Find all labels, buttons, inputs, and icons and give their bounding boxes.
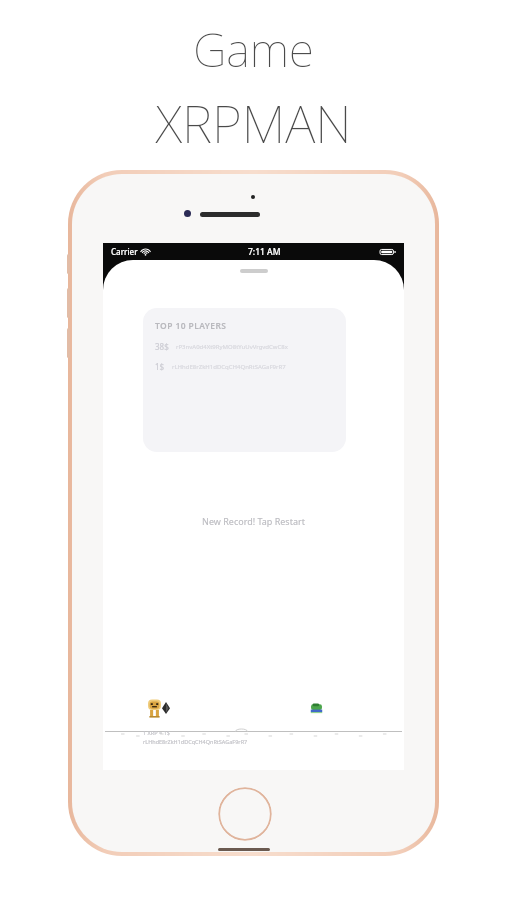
staticText: XRPMAN: [155, 87, 352, 158]
staticText: 1 XRP = 1$: [143, 729, 170, 736]
staticText: Game: [193, 18, 314, 81]
staticText: 38$: [155, 341, 169, 352]
staticText: rLHhdE8rZkH1dDCqCH4QnRtSAGaF9rR7: [143, 738, 248, 745]
staticText: rP3nvA0d4Xt9RyMO8tYuUvVrgvdCwC8x: [176, 343, 288, 351]
button[interactable]: TOP 10 PLAYERS: [143, 308, 346, 452]
button[interactable]: New Record! Tap Restart: [192, 511, 315, 531]
staticText: TOP 10 PLAYERS: [155, 320, 227, 332]
staticText: rLHhdE8rZkH1dDCqCH4QnRtSAGaF9rR7: [172, 363, 286, 371]
staticText: 7:11 AM: [248, 246, 281, 258]
staticText: New Record! Tap Restart: [202, 515, 305, 527]
button[interactable]: Home: [218, 787, 272, 841]
staticText: Carrier: [111, 246, 138, 257]
staticText: 1$: [155, 361, 165, 372]
